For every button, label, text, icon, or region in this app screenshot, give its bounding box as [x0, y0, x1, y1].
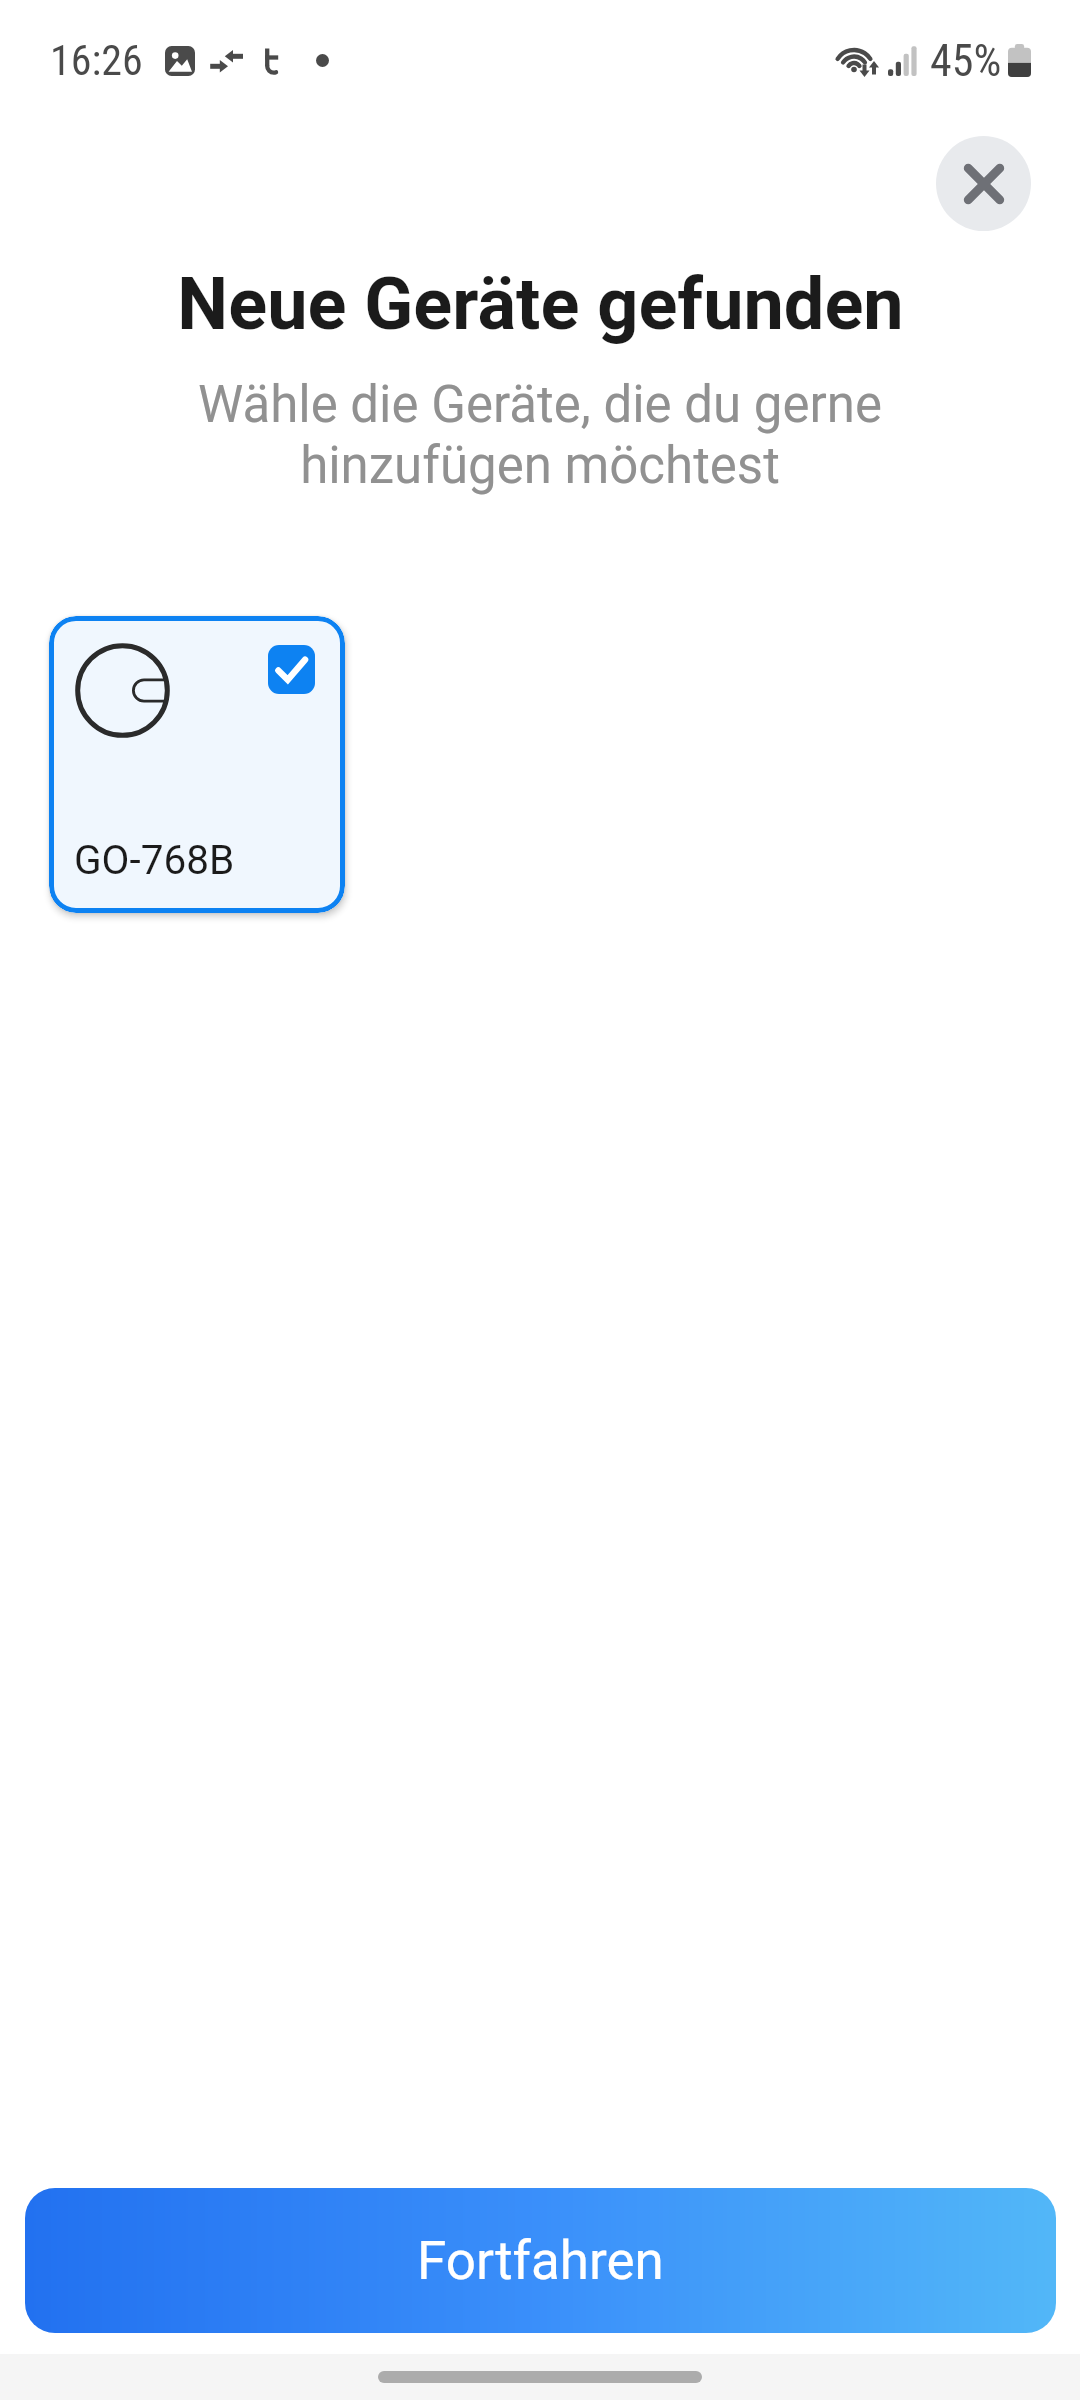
staticText: Fortfahren — [417, 2230, 664, 2292]
button[interactable]: Schließen — [936, 136, 1031, 231]
staticText: Neue Geräte gefunden — [177, 262, 904, 346]
staticText: Wähle die Geräte, die du gerne hinzufüge… — [80, 375, 1000, 496]
staticText: 16:26 — [50, 36, 143, 85]
staticText: 45% — [930, 35, 1002, 87]
button[interactable]: Gerät ausgewählt — [268, 645, 315, 694]
staticText: GO-768B — [74, 836, 235, 883]
button[interactable]: GO-768B — [49, 616, 345, 913]
button[interactable]: Fortfahren — [25, 2188, 1056, 2333]
